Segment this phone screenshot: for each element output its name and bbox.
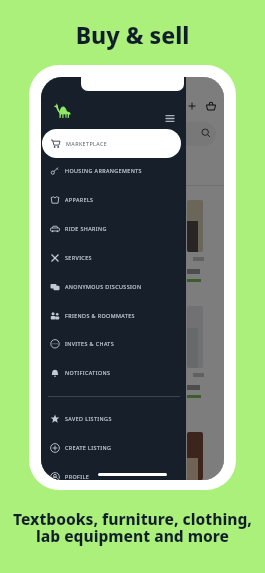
staticText: Buy & sell — [0, 19, 265, 50]
button[interactable] — [69, 122, 216, 146]
staticText: INVITES & CHATS — [65, 340, 115, 347]
button[interactable]: ANONYMOUS DISCUSSION — [41, 274, 186, 298]
staticText: RIDE SHARING — [65, 225, 107, 232]
staticText: FRIENDS & ROOMMATES — [65, 312, 135, 319]
staticText: HOUSING ARRANGEMENTS — [65, 167, 142, 174]
button[interactable]: Open menu — [160, 108, 180, 128]
staticText: NOTIFICATIONS — [65, 369, 111, 376]
staticText: PROFILE — [65, 473, 90, 480]
staticText: Textbooks, furniture, clothing, — [13, 508, 252, 529]
button[interactable]: SAVED LISTINGS — [41, 406, 186, 430]
staticText: MARKETPLACE — [66, 140, 108, 147]
button[interactable]: Add listing — [186, 100, 198, 112]
button[interactable]: MARKETPLACE — [42, 129, 181, 158]
button[interactable]: APPARELS — [41, 187, 186, 211]
staticText: lab equipment and more — [36, 525, 229, 546]
button[interactable]: HOUSING ARRANGEMENTS — [41, 158, 186, 182]
staticText: SERVICES — [65, 254, 92, 261]
staticText: ANONYMOUS DISCUSSION — [65, 283, 142, 290]
button[interactable]: Cart — [205, 100, 217, 112]
button[interactable]: FRIENDS & ROOMMATES — [41, 303, 186, 327]
button[interactable]: NOTIFICATIONS — [41, 360, 186, 384]
staticText: SAVED LISTINGS — [65, 415, 112, 422]
button[interactable]: RIDE SHARING — [41, 216, 186, 240]
button[interactable]: PROFILE — [41, 464, 186, 480]
staticText: CREATE LISTING — [65, 444, 112, 451]
button[interactable]: SERVICES — [41, 245, 186, 269]
staticText: APPARELS — [65, 196, 94, 203]
button[interactable]: INVITES & CHATS — [41, 331, 186, 355]
button[interactable]: CREATE LISTING — [41, 435, 186, 459]
